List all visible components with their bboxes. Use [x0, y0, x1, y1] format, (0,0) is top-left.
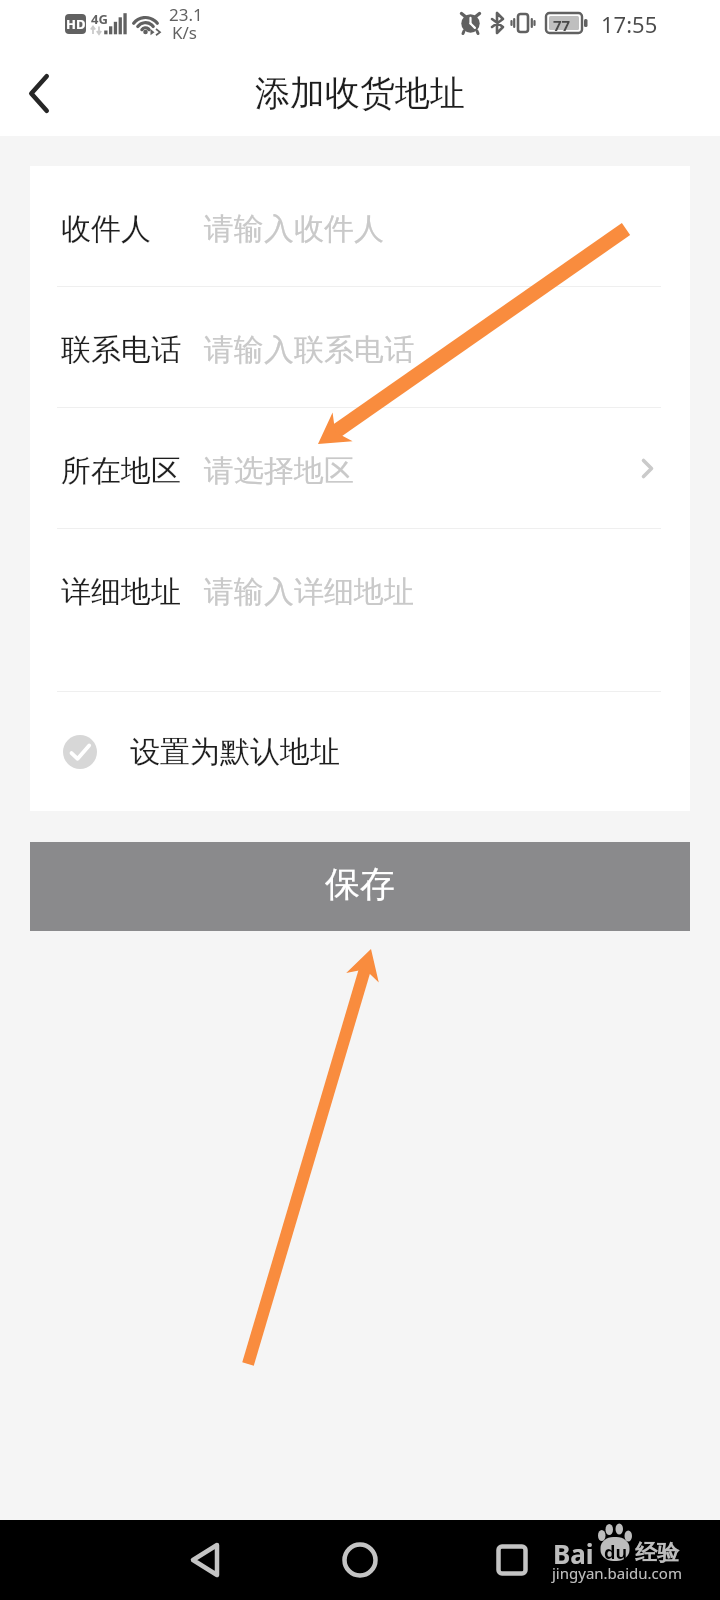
staticText: 收件人: [61, 210, 151, 248]
staticText: 请输入收件人: [204, 210, 384, 248]
staticText: 请选择地区: [204, 452, 354, 490]
staticText: 经验: [635, 1539, 679, 1567]
button[interactable]: 详细地址: [30, 529, 690, 691]
staticText: 设置为默认地址: [130, 733, 340, 771]
staticText: 17:55: [601, 9, 658, 39]
staticText: HD: [66, 15, 86, 33]
staticText: 请输入详细地址: [204, 573, 414, 611]
staticText: 保存: [325, 862, 395, 906]
staticText: 77: [553, 15, 571, 35]
staticText: 23.1: [169, 3, 203, 26]
staticText: 4G: [91, 10, 108, 28]
staticText: 请输入联系电话: [204, 331, 414, 369]
button[interactable]: 收件人: [30, 166, 690, 286]
staticText: 联系电话: [61, 331, 181, 369]
staticText: 所在地区: [61, 452, 181, 490]
staticText: K/s: [172, 21, 197, 44]
button[interactable]: Back: [0, 56, 78, 136]
staticText: jingyan.baidu.com: [552, 1563, 682, 1583]
staticText: 添加收货地址: [255, 71, 465, 115]
staticText: Bai: [553, 1536, 594, 1571]
staticText: du: [604, 1540, 628, 1565]
button[interactable]: 所在地区: [30, 408, 690, 528]
button[interactable]: Navigate back: [175, 1520, 235, 1600]
button[interactable]: 保存: [30, 842, 690, 931]
button[interactable]: 联系电话: [30, 287, 690, 407]
button[interactable]: 设置为默认地址: [30, 692, 690, 811]
staticText: 详细地址: [61, 573, 181, 611]
button[interactable]: Home: [330, 1520, 390, 1600]
button[interactable]: Recents: [482, 1520, 542, 1600]
